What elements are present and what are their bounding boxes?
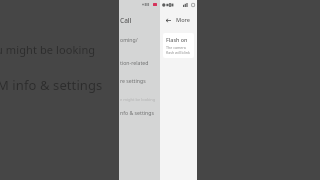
staticText: nfo & settings — [120, 109, 154, 116]
button[interactable]: nfo & settings — [119, 107, 160, 117]
button[interactable]: Back — [163, 15, 173, 25]
staticText: tion-related settings — [120, 59, 160, 66]
staticText: oming/Outgoing calls — [120, 36, 160, 43]
button[interactable]: e might be looking for — [119, 95, 160, 103]
staticText: e might be looking for — [120, 97, 160, 102]
button[interactable]: tion-related settings — [119, 57, 160, 67]
staticText: re settings — [120, 77, 146, 84]
button[interactable]: re settings — [119, 75, 160, 85]
staticText: M info & settings — [0, 76, 103, 94]
button[interactable]: Flash on call — [163, 33, 194, 58]
staticText: Call — [120, 16, 132, 25]
staticText: More settings — [176, 16, 197, 24]
staticText: Flash on call — [166, 36, 191, 43]
button[interactable]: oming/Outgoing calls — [119, 34, 160, 44]
staticText: u might be looking for: — [0, 42, 115, 57]
staticText: The camera flash will blink when you get… — [166, 45, 191, 55]
